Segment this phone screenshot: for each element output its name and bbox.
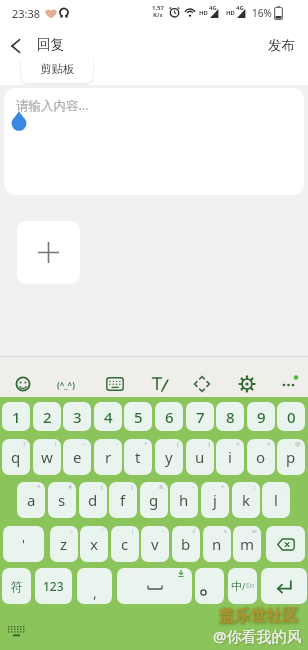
staticText: 1 — [12, 407, 21, 427]
button[interactable]: c — [111, 526, 139, 562]
button[interactable]: 剪贴板 — [21, 55, 93, 83]
button[interactable]: l — [262, 482, 290, 518]
staticText: 中 — [231, 579, 242, 593]
staticText: | — [131, 527, 135, 535]
button[interactable]: i — [216, 439, 244, 475]
staticText: i — [228, 447, 232, 467]
staticText: > — [267, 440, 271, 448]
button[interactable] — [4, 34, 28, 58]
button[interactable]: p — [277, 439, 305, 475]
button[interactable]: (^_^) — [51, 369, 81, 399]
button[interactable] — [266, 526, 305, 562]
staticText: 4 — [104, 407, 113, 427]
button[interactable]: 2 — [33, 402, 61, 431]
button[interactable]: 6 — [155, 402, 183, 431]
staticText: 23:38 — [12, 6, 41, 21]
staticText: 8 — [226, 407, 235, 427]
button[interactable] — [274, 369, 304, 399]
staticText: HD — [226, 9, 235, 17]
staticText: @你看我的风 — [213, 626, 302, 646]
button[interactable]: f — [109, 482, 137, 518]
staticText: + — [221, 483, 225, 491]
button[interactable]: q — [2, 439, 30, 475]
button[interactable]: 中 — [228, 568, 257, 604]
button[interactable]: t — [124, 439, 152, 475]
staticText: (^_^) — [57, 379, 75, 390]
staticText: a — [27, 490, 36, 510]
button[interactable]: 123 — [35, 568, 72, 604]
button[interactable]: u — [186, 439, 214, 475]
staticText: y — [165, 447, 173, 467]
staticText: r — [105, 447, 112, 467]
staticText: s — [224, 527, 227, 535]
staticText: b — [181, 534, 191, 554]
staticText: 0 — [287, 407, 296, 427]
button[interactable]: 4 — [94, 402, 122, 431]
button[interactable]: 发布 — [258, 32, 304, 58]
staticText: z — [60, 534, 68, 554]
staticText: u — [195, 447, 205, 467]
button[interactable] — [8, 369, 38, 399]
button[interactable]: 符 — [2, 568, 31, 604]
staticText: x — [90, 534, 98, 554]
button[interactable]: z — [50, 526, 78, 562]
staticText: · — [163, 527, 165, 535]
staticText: 盖乐世社区 — [218, 606, 298, 626]
button[interactable]: 请输入内容... — [4, 88, 304, 195]
button[interactable]: v — [141, 526, 169, 562]
button[interactable] — [100, 369, 130, 399]
staticText: p — [286, 447, 296, 467]
staticText: 4G — [236, 4, 244, 12]
button[interactable] — [195, 568, 224, 604]
button[interactable]: j — [201, 482, 229, 518]
button[interactable]: ' — [3, 526, 44, 562]
staticText: k — [242, 490, 251, 510]
staticText: q — [11, 447, 21, 467]
staticText: ( — [177, 440, 179, 448]
button[interactable]: m — [233, 526, 261, 562]
button[interactable]: 1 — [2, 402, 30, 431]
staticText: l — [274, 490, 278, 510]
staticText: c — [121, 534, 129, 554]
staticText: m — [240, 534, 255, 554]
staticText: t — [135, 447, 141, 467]
button[interactable] — [145, 369, 175, 399]
button[interactable]: w — [33, 439, 61, 475]
button[interactable]: y — [155, 439, 183, 475]
button[interactable] — [187, 369, 217, 399]
button[interactable]: 8 — [216, 402, 244, 431]
staticText: + — [144, 440, 148, 448]
staticText: ~ — [70, 527, 74, 535]
button[interactable]: 9 — [247, 402, 275, 431]
staticText: ) — [208, 440, 210, 448]
staticText: v — [151, 534, 159, 554]
button[interactable]: 3 — [63, 402, 91, 431]
button[interactable]: x — [80, 526, 108, 562]
button[interactable]: a — [17, 482, 45, 518]
button[interactable]: b — [172, 526, 200, 562]
button[interactable]: , — [77, 568, 112, 604]
button[interactable] — [261, 568, 307, 604]
staticText: w — [252, 527, 257, 535]
staticText: j — [213, 490, 217, 510]
button[interactable]: s — [48, 482, 76, 518]
button[interactable]: e — [63, 439, 91, 475]
button[interactable]: r — [94, 439, 122, 475]
button[interactable]: 0 — [277, 402, 305, 431]
button[interactable]: 7 — [186, 402, 214, 431]
staticText: ) — [131, 483, 133, 491]
button[interactable]: g — [140, 482, 168, 518]
button[interactable] — [17, 221, 80, 284]
staticText: # — [68, 483, 72, 491]
button[interactable]: k — [232, 482, 260, 518]
button[interactable]: o — [247, 439, 275, 475]
button[interactable]: h — [170, 482, 198, 518]
staticText: √ — [192, 527, 196, 534]
button[interactable]: d — [79, 482, 107, 518]
button[interactable]: 5 — [124, 402, 152, 431]
staticText: 6 — [165, 407, 174, 427]
button[interactable] — [232, 369, 262, 399]
button[interactable] — [117, 568, 192, 604]
staticText: ( — [101, 483, 103, 491]
button[interactable]: n — [203, 526, 231, 562]
